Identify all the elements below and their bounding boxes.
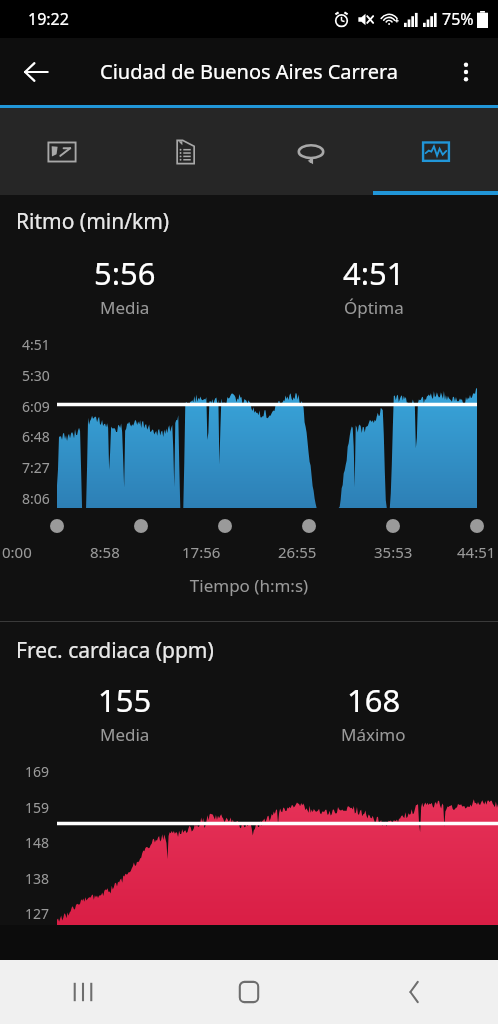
staticText: 148 <box>25 833 50 852</box>
staticText: Óptima <box>344 296 404 319</box>
staticText: 17:56 <box>182 542 221 562</box>
staticText: 5:30 <box>22 366 50 385</box>
staticText: 127 <box>25 904 50 923</box>
staticText: 138 <box>25 869 50 888</box>
staticText: 6:48 <box>22 427 50 446</box>
staticText: 168 <box>347 679 401 721</box>
staticText: 35:53 <box>374 542 413 562</box>
staticText: 169 <box>25 762 50 781</box>
staticText: 159 <box>25 798 50 817</box>
staticText: Media <box>100 723 150 746</box>
button[interactable]: Back <box>12 48 60 96</box>
staticText: Tiempo (h:m:s) <box>0 574 498 597</box>
button[interactable]: Map <box>0 108 124 195</box>
button[interactable]: Home <box>166 960 332 1024</box>
staticText: 75% <box>442 8 474 30</box>
button[interactable]: More options <box>442 48 490 96</box>
staticText: 5:56 <box>94 252 156 294</box>
staticText: 155 <box>98 679 152 721</box>
staticText: Máximo <box>341 723 406 746</box>
staticText: Ritmo (min/km) <box>16 207 170 236</box>
staticText: 0:00 <box>2 542 32 562</box>
staticText: 4:51 <box>22 335 50 354</box>
button[interactable]: Back <box>332 960 498 1024</box>
staticText: 6:09 <box>22 397 50 416</box>
staticText: 26:55 <box>278 542 317 562</box>
button[interactable]: Recent apps <box>0 960 166 1024</box>
staticText: 7:27 <box>22 458 50 477</box>
button[interactable]: Laps <box>248 108 373 195</box>
staticText: Frec. cardiaca (ppm) <box>16 636 214 665</box>
staticText: Media <box>100 296 150 319</box>
button[interactable]: Details <box>124 108 248 195</box>
staticText: 4:51 <box>343 252 405 294</box>
staticText: Ciudad de Buenos Aires Carrera <box>100 58 399 85</box>
staticText: 44:51 <box>457 542 496 562</box>
staticText: 8:58 <box>90 542 120 562</box>
staticText: 8:06 <box>22 489 50 508</box>
staticText: 19:22 <box>28 8 69 30</box>
button[interactable]: Charts <box>373 108 498 195</box>
